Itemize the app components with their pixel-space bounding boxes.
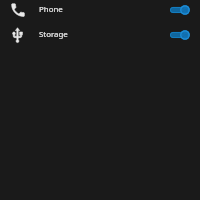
button[interactable]: Storage switch, on [167,23,193,48]
button[interactable]: Storage [0,23,200,48]
staticText: Phone [39,4,63,15]
button[interactable]: Phone [0,0,200,23]
button[interactable]: Phone switch, on [167,0,193,23]
staticText: Storage [39,29,68,40]
staticText: On [181,7,188,13]
staticText: On [181,32,188,38]
